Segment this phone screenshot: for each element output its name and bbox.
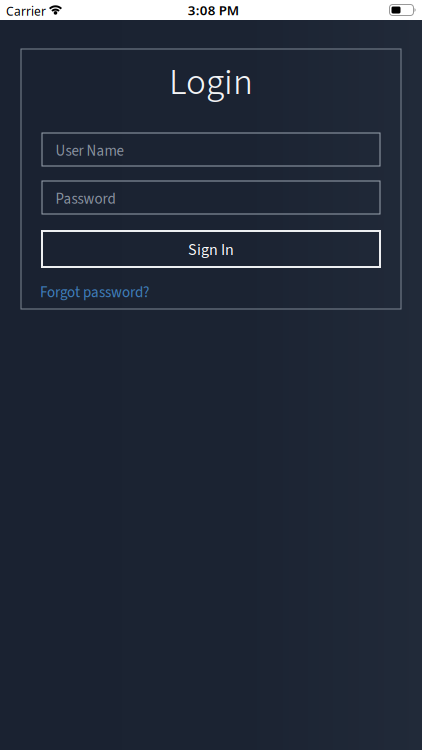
button[interactable]: User Name	[42, 133, 380, 166]
staticText: Sign In	[188, 239, 234, 261]
staticText: User Name	[55, 140, 123, 162]
staticText: 3:08 PM	[188, 1, 239, 19]
button[interactable]: Sign In	[42, 231, 380, 267]
staticText: Login	[169, 56, 253, 109]
button[interactable]: Forgot password?	[40, 282, 149, 303]
staticText: Forgot password?	[40, 282, 149, 303]
button[interactable]: Password	[42, 181, 380, 214]
staticText: Password	[55, 188, 115, 210]
staticText: Carrier	[6, 3, 46, 19]
